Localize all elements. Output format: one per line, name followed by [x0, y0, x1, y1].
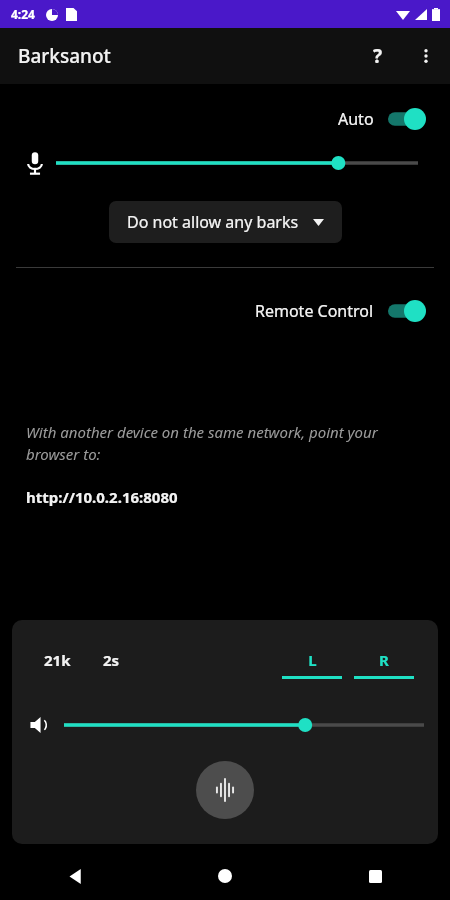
button[interactable]: Help: [354, 32, 402, 80]
button[interactable]: [56, 149, 418, 177]
button[interactable]: R: [354, 650, 414, 679]
button[interactable]: Recent apps: [300, 852, 450, 900]
button[interactable]: Back: [0, 852, 150, 900]
button[interactable]: L: [282, 650, 342, 679]
staticText: L: [308, 650, 317, 670]
button[interactable]: Remote Control: [0, 294, 450, 328]
button[interactable]: Do not allow any barks: [109, 201, 342, 243]
staticText: Barksanot: [18, 43, 111, 69]
button[interactable]: Record: [196, 761, 254, 819]
staticText: 21k: [44, 650, 71, 670]
button[interactable]: More options: [402, 32, 450, 80]
other: Microphone: [26, 151, 44, 175]
staticText: 4:24: [11, 6, 35, 22]
staticText: http://10.0.2.16:8080: [26, 487, 424, 507]
button[interactable]: Home: [150, 852, 300, 900]
staticText: Auto: [338, 108, 374, 130]
staticText: With another device on the same network,…: [26, 422, 424, 465]
other: Volume: [30, 716, 52, 734]
staticText: ?: [373, 43, 383, 69]
button[interactable]: Auto: [0, 102, 450, 136]
button[interactable]: [64, 711, 424, 739]
staticText: Do not allow any barks: [127, 211, 299, 233]
staticText: R: [379, 650, 389, 670]
staticText: Remote Control: [255, 300, 374, 322]
staticText: 2s: [103, 650, 120, 670]
